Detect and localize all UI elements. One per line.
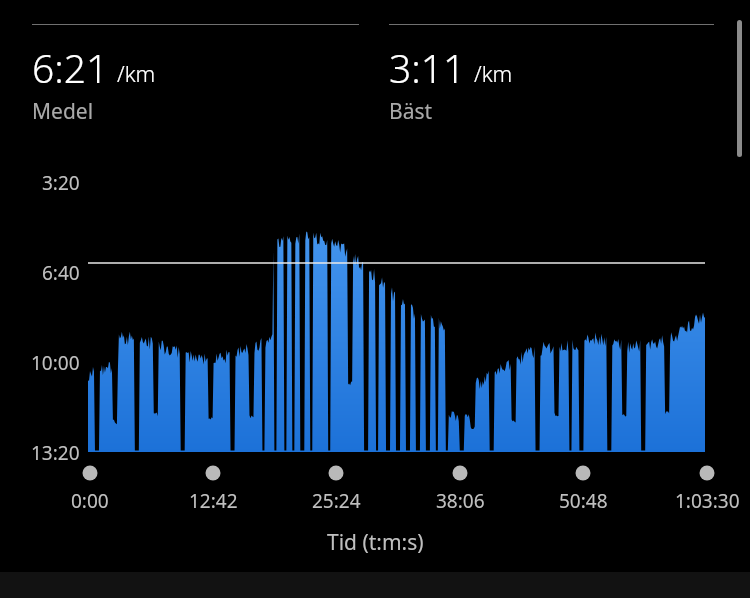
staticText: 6:21 (32, 41, 109, 94)
button[interactable]: 6:21 (32, 0, 359, 126)
staticText: Medel (32, 97, 94, 126)
staticText: /km (474, 58, 513, 88)
staticText: 3:20 (42, 170, 80, 196)
staticText: 10:00 (31, 350, 80, 376)
staticText: /km (117, 58, 156, 88)
staticText: 0:00 (71, 488, 109, 514)
staticText: 50:48 (559, 488, 608, 514)
staticText: 12:42 (189, 488, 238, 514)
staticText: 1:03:30 (675, 488, 740, 514)
staticText: 6:40 (42, 260, 80, 286)
staticText: 13:20 (31, 440, 80, 466)
staticText: Bäst (389, 97, 433, 126)
staticText: 3:11 (389, 41, 466, 94)
button[interactable]: 3:11 (389, 0, 714, 126)
staticText: 25:24 (312, 488, 361, 514)
staticText: 38:06 (436, 488, 485, 514)
staticText: Tid (t:m:s) (327, 528, 424, 557)
